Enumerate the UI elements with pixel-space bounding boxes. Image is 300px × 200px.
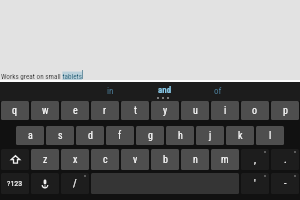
button[interactable]: and <box>137 82 191 101</box>
button[interactable]: / <box>61 173 89 194</box>
button[interactable]: c <box>91 149 119 170</box>
staticText: ?123 <box>7 179 23 188</box>
button[interactable]: h <box>166 126 194 145</box>
staticText: b <box>163 154 168 166</box>
staticText: of <box>214 86 222 97</box>
staticText: x <box>73 154 78 166</box>
button[interactable]: ' <box>241 173 269 194</box>
button[interactable]: q <box>1 101 29 120</box>
staticText: z <box>43 154 48 166</box>
staticText: y <box>163 105 168 117</box>
staticText: p <box>283 105 288 117</box>
button[interactable]: - <box>271 173 299 194</box>
button[interactable]: of <box>191 82 245 101</box>
button[interactable]: . <box>271 149 299 170</box>
button[interactable]: Shift <box>1 149 29 170</box>
staticText: and <box>158 85 172 96</box>
button[interactable]: z <box>31 149 59 170</box>
staticText: q <box>12 105 18 117</box>
staticText: / <box>73 178 77 190</box>
button[interactable]: Voice input <box>31 173 59 194</box>
staticText: g <box>148 130 153 142</box>
button[interactable]: o <box>241 101 269 120</box>
button[interactable]: f <box>106 126 134 145</box>
button[interactable]: a <box>16 126 44 145</box>
staticText: h <box>178 130 183 142</box>
staticText: t <box>134 105 137 117</box>
button[interactable]: w <box>31 101 59 120</box>
button[interactable]: i <box>211 101 239 120</box>
button[interactable]: s <box>46 126 74 145</box>
staticText: j <box>209 130 212 142</box>
button[interactable]: y <box>151 101 179 120</box>
button[interactable]: in <box>83 82 137 101</box>
button[interactable]: m <box>211 149 239 170</box>
staticText: s <box>58 130 63 142</box>
button[interactable]: j <box>196 126 224 145</box>
button[interactable]: d <box>76 126 104 145</box>
staticText: Works great on small tablets <box>1 72 82 80</box>
button[interactable]: r <box>91 101 119 120</box>
button[interactable]: n <box>181 149 209 170</box>
staticText: l <box>269 130 272 142</box>
button[interactable]: k <box>226 126 254 145</box>
button[interactable]: v <box>121 149 149 170</box>
button[interactable]: e <box>61 101 89 120</box>
button[interactable]: t <box>121 101 149 120</box>
button[interactable]: l <box>256 126 284 145</box>
staticText: - <box>284 178 287 190</box>
staticText: e <box>73 105 78 117</box>
button[interactable]: , <box>241 149 269 170</box>
button[interactable]: p <box>271 101 299 120</box>
button[interactable]: g <box>136 126 164 145</box>
staticText: v <box>133 154 138 166</box>
staticText: m <box>221 154 229 166</box>
staticText: u <box>193 105 198 117</box>
staticText: in <box>107 86 114 97</box>
staticText: k <box>238 130 243 142</box>
staticText: n <box>193 154 198 166</box>
staticText: i <box>224 105 227 117</box>
button[interactable]: x <box>61 149 89 170</box>
button[interactable]: u <box>181 101 209 120</box>
staticText: a <box>28 130 33 142</box>
button[interactable]: b <box>151 149 179 170</box>
staticText: d <box>88 130 93 142</box>
button[interactable]: ?123 <box>1 173 29 194</box>
staticText: o <box>252 105 258 117</box>
staticText: , <box>254 154 256 166</box>
staticText: . <box>284 154 287 166</box>
staticText: c <box>103 154 108 166</box>
staticText: r <box>103 105 107 117</box>
staticText: ' <box>254 178 256 190</box>
staticText: f <box>118 130 122 142</box>
staticText: w <box>42 105 49 117</box>
